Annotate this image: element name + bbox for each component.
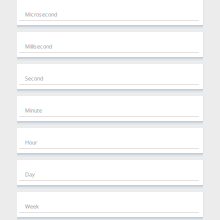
staticText: Minute bbox=[25, 107, 42, 114]
button[interactable]: Microsecond bbox=[17, 0, 203, 25]
button[interactable]: Week bbox=[17, 192, 203, 217]
staticText: Hour bbox=[25, 139, 37, 146]
staticText: Microsecond bbox=[25, 11, 57, 18]
staticText: Week bbox=[25, 203, 39, 210]
button[interactable]: Millisecond bbox=[17, 32, 203, 57]
button[interactable]: Minute bbox=[17, 96, 203, 121]
staticText: Millisecond bbox=[25, 43, 52, 50]
button[interactable]: Second bbox=[17, 64, 203, 89]
button[interactable]: Day bbox=[17, 160, 203, 185]
staticText: Day bbox=[25, 171, 35, 178]
staticText: Second bbox=[25, 75, 43, 82]
button[interactable]: Hour bbox=[17, 128, 203, 153]
